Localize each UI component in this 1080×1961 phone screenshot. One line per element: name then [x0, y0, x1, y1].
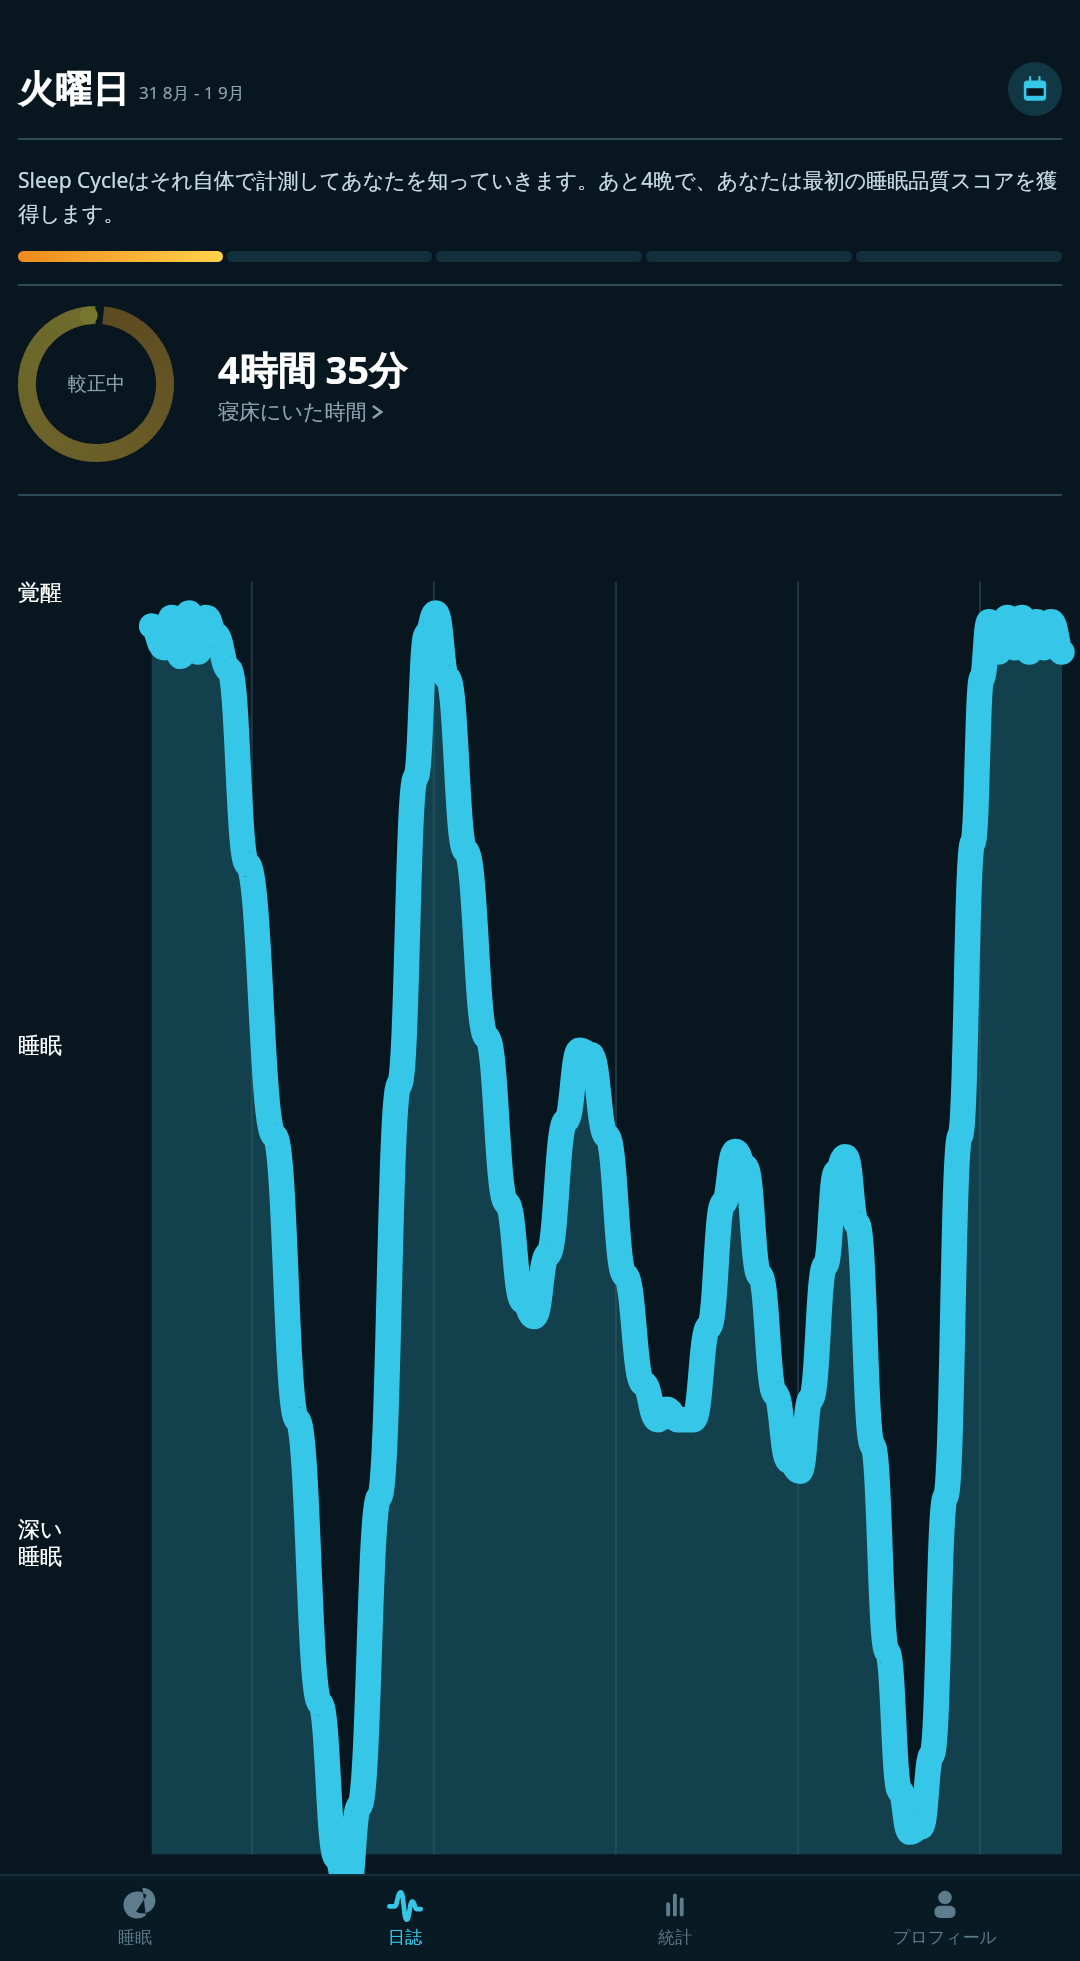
staticText: 覚醒: [18, 579, 62, 607]
staticText: 統計: [658, 1927, 692, 1948]
staticText: 睡眠: [118, 1927, 152, 1948]
button[interactable]: Calibrating sleep quality: [18, 306, 174, 462]
staticText: 較正中: [68, 372, 125, 396]
button[interactable]: 睡眠: [0, 1875, 270, 1961]
staticText: 日誌: [388, 1927, 422, 1948]
staticText: Sleep Cycleはそれ自体で計測してあなたを知っていきます。あと4晩で、あ…: [18, 166, 1062, 227]
staticText: 寝床にいた時間: [218, 399, 367, 425]
staticText: 火曜日: [18, 66, 129, 113]
button[interactable]: 覚醒: [0, 496, 1080, 1875]
button[interactable]: 日誌: [270, 1875, 540, 1961]
button[interactable]: 4時間 35分: [218, 343, 408, 425]
staticText: 深い 睡眠: [18, 1516, 63, 1571]
button[interactable]: Calendar: [1008, 62, 1062, 116]
staticText: 睡眠: [18, 1032, 62, 1060]
button[interactable]: プロフィール: [810, 1875, 1080, 1961]
staticText: 4時間 35分: [218, 343, 408, 395]
button[interactable]: 統計: [540, 1875, 810, 1961]
staticText: プロフィール: [893, 1927, 997, 1948]
staticText: 31 8月 - 1 9月: [139, 81, 245, 104]
